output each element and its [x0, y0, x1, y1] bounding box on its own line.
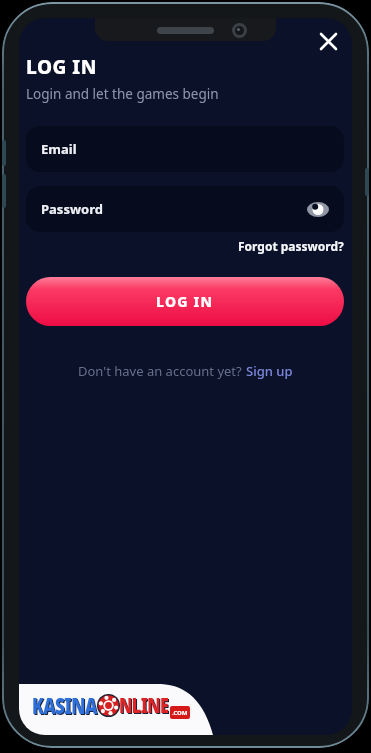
staticText: Sign up [246, 362, 293, 380]
staticText: NLINE [119, 691, 169, 719]
staticText: LOG IN [156, 292, 214, 311]
staticText: .COM [172, 709, 188, 717]
button[interactable]: Email [26, 126, 344, 172]
staticText: LOG IN [26, 54, 97, 80]
staticText: Email [41, 140, 77, 158]
staticText: NLINE [120, 692, 170, 721]
button[interactable] [313, 26, 343, 56]
button[interactable]: Forgot password? [238, 238, 344, 254]
staticText: Don't have an account yet? [78, 362, 246, 380]
staticText: KASINA [33, 692, 98, 722]
button[interactable]: LOG IN [26, 277, 344, 326]
button[interactable]: Sign up [246, 362, 293, 380]
button[interactable]: Password [26, 186, 344, 232]
staticText: Password [41, 200, 103, 218]
staticText: KASINA [32, 690, 97, 720]
staticText: Login and let the games begin [26, 85, 219, 103]
staticText: Forgot password? [238, 238, 344, 254]
